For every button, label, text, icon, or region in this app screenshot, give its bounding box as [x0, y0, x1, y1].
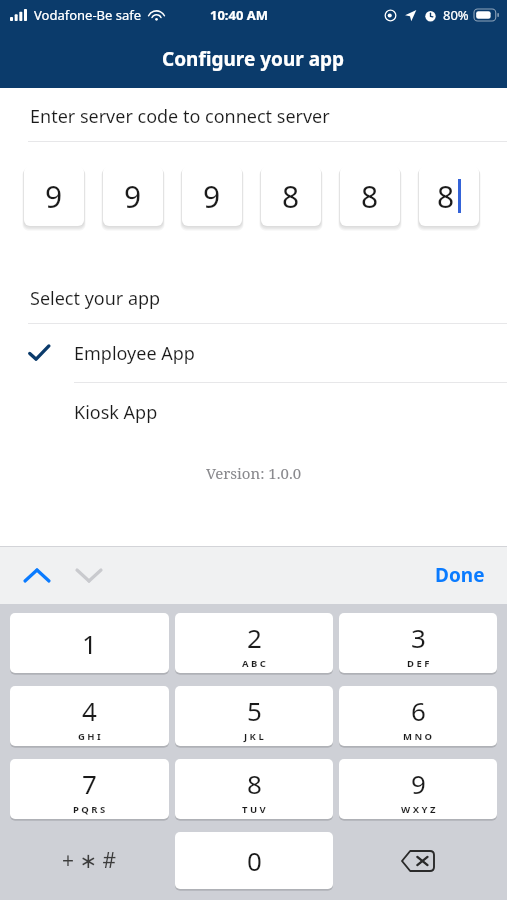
staticText: 8: [282, 176, 300, 217]
button[interactable]: 9: [103, 166, 163, 226]
staticText: 6: [411, 693, 426, 728]
staticText: 5: [247, 693, 262, 728]
staticText: 8: [247, 766, 262, 801]
button[interactable]: 8: [340, 166, 400, 226]
staticText: G H I: [78, 730, 101, 743]
staticText: D E F: [407, 657, 430, 670]
staticText: J K L: [244, 730, 264, 743]
staticText: Employee App: [74, 341, 195, 366]
button[interactable]: Kiosk App: [0, 383, 507, 441]
staticText: 9: [203, 176, 221, 217]
button[interactable]: 7: [10, 759, 169, 819]
button[interactable]: 0: [175, 832, 333, 889]
staticText: Configure your app: [162, 46, 345, 72]
staticText: T U V: [242, 803, 266, 816]
staticText: P Q R S: [73, 803, 106, 816]
staticText: Kiosk App: [74, 400, 158, 425]
staticText: 80%: [443, 6, 469, 24]
button[interactable]: 1: [10, 613, 169, 673]
button[interactable]: 8: [419, 166, 479, 226]
staticText: 7: [82, 766, 97, 801]
button[interactable]: 8: [175, 759, 333, 819]
button[interactable]: Symbols: [10, 832, 169, 889]
button[interactable]: 2: [175, 613, 333, 673]
staticText: 1: [82, 626, 97, 661]
staticText: 9: [411, 766, 426, 801]
button[interactable]: Next field: [68, 556, 110, 594]
button[interactable]: Backspace: [339, 832, 497, 889]
button[interactable]: 9: [339, 759, 497, 819]
staticText: 2: [247, 620, 262, 655]
button[interactable]: Selected: [0, 324, 507, 382]
staticText: 8: [437, 176, 455, 217]
staticText: Enter server code to connect server: [30, 104, 330, 129]
staticText: 9: [124, 176, 142, 217]
button[interactable]: 8: [261, 166, 321, 226]
staticText: A B C: [242, 657, 266, 670]
button[interactable]: 5: [175, 686, 333, 746]
button[interactable]: 6: [339, 686, 497, 746]
staticText: M N O: [403, 730, 433, 743]
button[interactable]: 9: [24, 166, 84, 226]
staticText: 0: [247, 843, 262, 878]
staticText: 8: [361, 176, 379, 217]
button[interactable]: 9: [182, 166, 242, 226]
staticText: Done: [435, 562, 485, 588]
button[interactable]: Previous field: [16, 556, 58, 594]
staticText: 3: [411, 620, 426, 655]
staticText: Select your app: [30, 286, 161, 311]
staticText: W X Y Z: [401, 803, 436, 816]
staticText: 4: [82, 693, 97, 728]
staticText: Version: 1.0.0: [0, 463, 507, 483]
button[interactable]: 4: [10, 686, 169, 746]
staticText: 10:40 AM: [210, 6, 269, 24]
staticText: 9: [45, 176, 63, 217]
button[interactable]: Done: [435, 562, 485, 588]
other: Selected: [28, 342, 50, 364]
staticText: + ∗ #: [62, 846, 117, 875]
button[interactable]: 3: [339, 613, 497, 673]
staticText: Vodafone-Be safe: [34, 6, 142, 24]
